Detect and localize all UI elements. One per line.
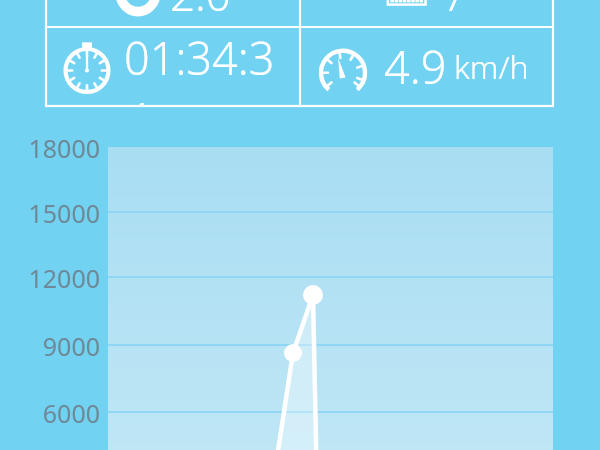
staticText: 01:34:34 [124, 27, 300, 106]
staticText: 15000 [28, 196, 100, 228]
staticText: 12000 [28, 261, 100, 293]
staticText: 2.0 [170, 0, 231, 24]
staticText: 4.9 [384, 36, 447, 97]
staticText: km/h [454, 45, 529, 89]
other: Battery [386, 0, 432, 17]
other: Distance [116, 0, 160, 16]
other: Speed [314, 38, 372, 96]
button[interactable]: Speed [300, 27, 553, 106]
staticText: 9000 [42, 329, 100, 361]
button[interactable]: Distance [46, 0, 300, 27]
button[interactable]: Battery [300, 0, 553, 27]
other: Duration [58, 38, 116, 96]
staticText: 18000 [28, 131, 100, 163]
staticText: 7 [442, 0, 468, 24]
staticText: 6000 [42, 396, 100, 428]
button[interactable]: Duration [46, 27, 300, 106]
